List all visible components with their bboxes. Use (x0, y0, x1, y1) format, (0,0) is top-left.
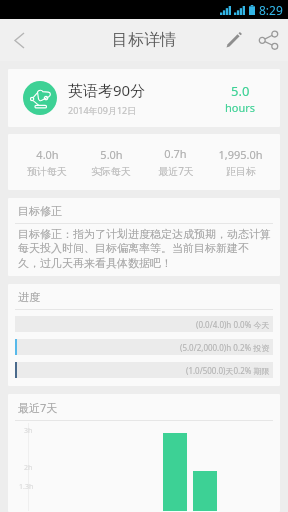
staticText: hours (225, 100, 256, 115)
staticText: 距目标 (226, 165, 256, 178)
staticText: 预计每天 (27, 165, 67, 178)
button[interactable]: 4.0h (15, 147, 79, 178)
staticText: 1,995.0h (218, 147, 263, 162)
staticText: (5.0/2,000.0)h 0.2% 投资 (180, 342, 270, 353)
staticText: 3h (24, 426, 33, 436)
button[interactable]: Edit (218, 19, 249, 61)
staticText: 目标修正 (18, 204, 62, 218)
button[interactable]: 英语考90分 (8, 69, 280, 127)
staticText: (0.0/4.0)h 0.0% 今天 (196, 319, 270, 330)
staticText: 5.0h (100, 147, 123, 162)
staticText: 最近7天 (18, 400, 58, 415)
staticText: 2h (24, 463, 33, 473)
staticText: 2014年09月12日 (68, 104, 137, 116)
button[interactable]: 0.7h (143, 146, 208, 178)
staticText: 8:29 (259, 2, 283, 18)
button[interactable]: Share (249, 19, 287, 61)
staticText: (1.0/500.0)天0.2% 期限 (186, 365, 270, 376)
staticText: 目标修正：指为了计划进度稳定达成预期，动态计算 每天投入时间、目标偏离率等。当前… (18, 227, 271, 270)
staticText: 5.0 (231, 82, 250, 100)
staticText: 4.0h (36, 147, 59, 162)
button[interactable]: 5.0h (79, 147, 143, 178)
button[interactable]: Back (0, 19, 38, 61)
staticText: 英语考90分 (68, 80, 146, 100)
staticText: 目标详情 (112, 30, 176, 50)
staticText: 实际每天 (91, 165, 131, 178)
button[interactable]: 1,995.0h (208, 147, 273, 178)
button[interactable]: (5.0/2,000.0)h 0.2% 投资 (15, 339, 273, 355)
staticText: 最近7天 (158, 164, 194, 178)
button[interactable]: (1.0/500.0)天0.2% 期限 (15, 362, 273, 378)
staticText: 0.7h (164, 146, 187, 161)
staticText: 进度 (18, 290, 40, 304)
staticText: 1.3h (19, 482, 34, 492)
button[interactable]: (0.0/4.0)h 0.0% 今天 (15, 316, 273, 332)
